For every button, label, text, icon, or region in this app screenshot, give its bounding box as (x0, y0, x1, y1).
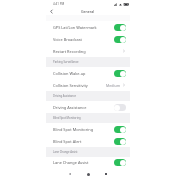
staticText: Driving Assistance (53, 105, 114, 110)
button[interactable]: Collision Sensitivity (46, 79, 130, 91)
button[interactable]: Collision Wake-up (46, 67, 130, 79)
button[interactable]: Recent apps (101, 169, 111, 179)
staticText: GPS Lat/Lon Watermark (53, 25, 114, 30)
staticText: Lane Change Assist (53, 150, 78, 154)
button[interactable]: Toggle on (114, 126, 126, 133)
button[interactable]: Voice Broadcast (46, 33, 130, 45)
button[interactable]: Toggle on (114, 70, 126, 77)
button[interactable]: Toggle on (114, 36, 126, 43)
staticText: Driving Assistance (53, 94, 77, 98)
button[interactable]: Driving Assistance (46, 101, 130, 113)
button[interactable]: Toggle off (114, 104, 126, 111)
button[interactable]: Toggle on (114, 24, 126, 31)
staticText: Blind Spot Alert (53, 139, 114, 144)
button[interactable]: Restart Recording (46, 45, 130, 57)
staticText: Medium (106, 83, 121, 88)
staticText: Collision Sensitivity (53, 83, 106, 88)
button[interactable]: GPS Lat/Lon Watermark (46, 21, 130, 33)
button[interactable]: Blind Spot Monitoring (46, 123, 130, 135)
staticText: Blind Spot Monitoring (53, 127, 114, 132)
button[interactable]: Blind Spot Alert (46, 135, 130, 147)
staticText: Collision Wake-up (53, 71, 114, 76)
button[interactable]: Lane Change Assist (46, 157, 130, 167)
button[interactable]: Back (46, 7, 57, 15)
staticText: General (81, 9, 95, 14)
staticText: Parking Surveillance (53, 60, 79, 64)
staticText: 4:41 PM (53, 2, 65, 6)
staticText: Blind Spot Monitoring (53, 116, 81, 120)
button[interactable]: Home (83, 169, 93, 179)
staticText: Lane Change Assist (53, 160, 114, 165)
button[interactable]: Toggle on (114, 138, 126, 145)
staticText: Voice Broadcast (53, 37, 114, 42)
button[interactable]: Back (65, 169, 75, 179)
staticText: Restart Recording (53, 49, 122, 54)
button[interactable]: Toggle on (114, 159, 126, 166)
